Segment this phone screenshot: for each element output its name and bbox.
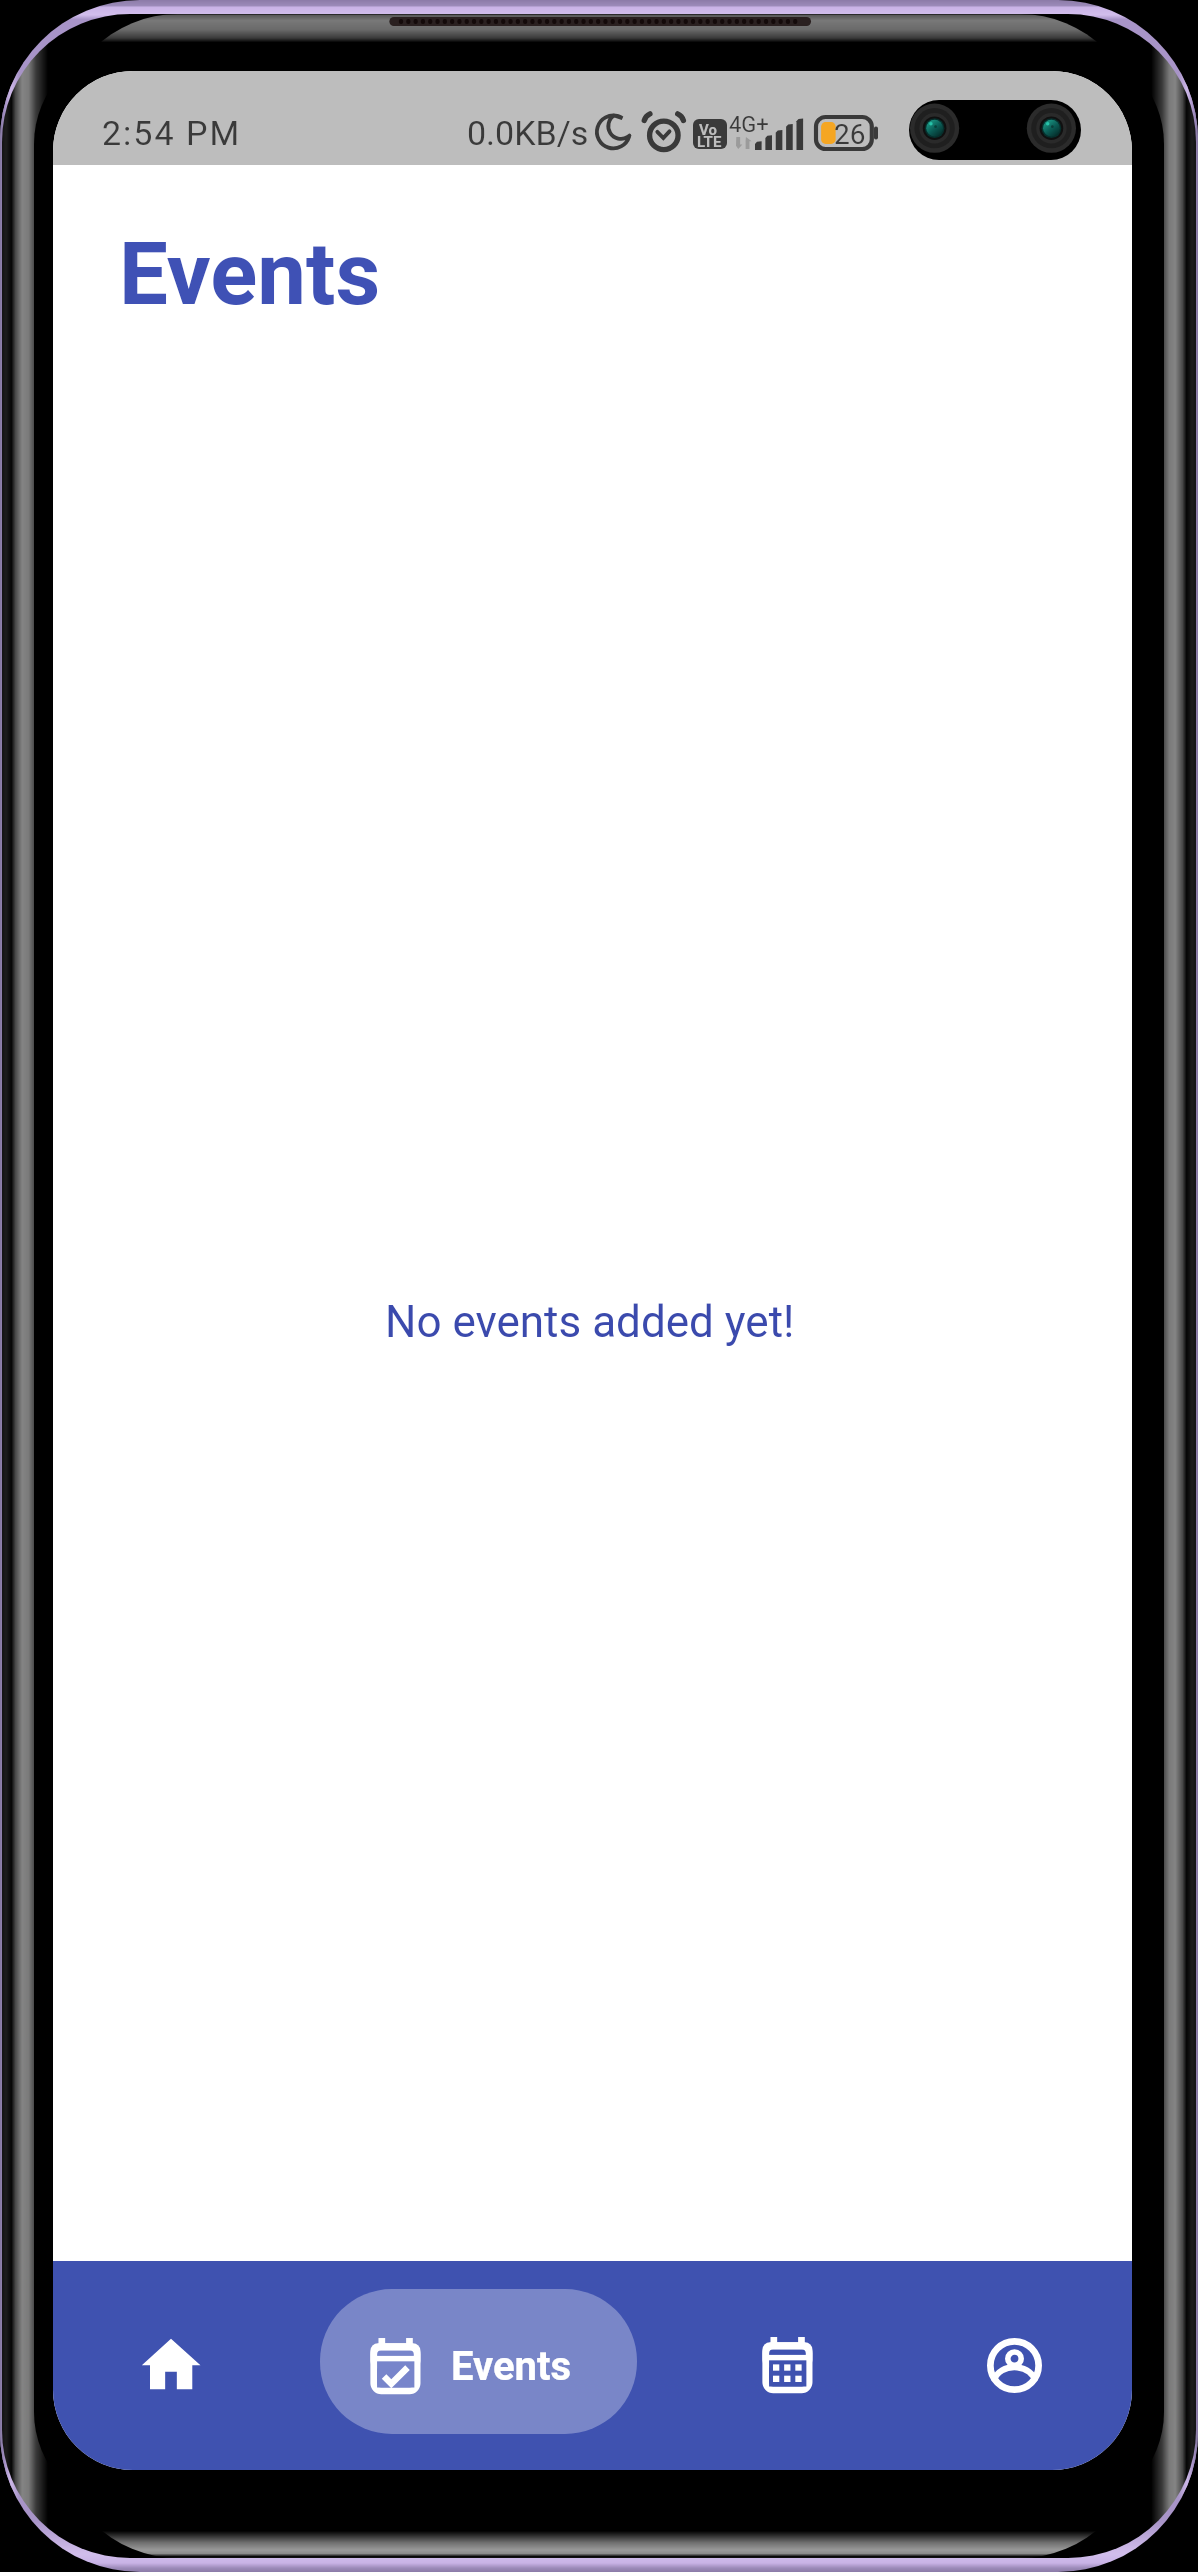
staticText: Events bbox=[119, 223, 381, 325]
staticText: Events bbox=[451, 2343, 572, 2390]
staticText: 0.0KB/s bbox=[467, 113, 589, 153]
button[interactable]: Events bbox=[320, 2289, 637, 2434]
staticText: Vo bbox=[699, 121, 717, 139]
staticText: 4G+ bbox=[729, 112, 769, 138]
button[interactable]: Home bbox=[104, 2298, 238, 2432]
staticText: 26 bbox=[834, 118, 866, 151]
staticText: 2:54 PM bbox=[102, 113, 242, 153]
staticText: No events added yet! bbox=[385, 1296, 795, 1348]
button[interactable]: Calendar bbox=[720, 2298, 854, 2432]
button[interactable]: Profile bbox=[947, 2298, 1081, 2432]
staticText: LTE bbox=[697, 133, 722, 149]
